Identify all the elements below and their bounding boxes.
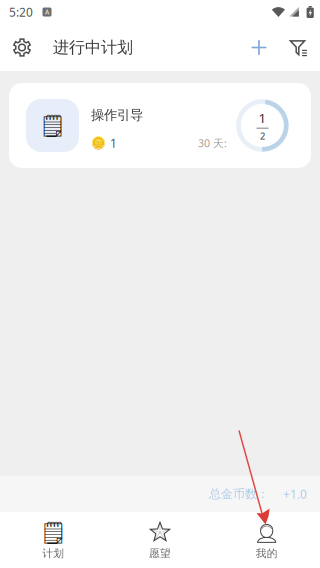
staticText: 进行中计划 <box>53 38 133 57</box>
button[interactable]: 设置 <box>7 26 37 68</box>
staticText: 1 <box>258 109 266 127</box>
staticText: 30 天: <box>198 136 227 150</box>
staticText: A <box>45 8 49 16</box>
button[interactable]: 🗒 <box>0 511 107 568</box>
staticText: 2 <box>260 130 265 142</box>
button[interactable]: 筛选 <box>281 26 314 68</box>
staticText: 计划 <box>42 547 64 560</box>
staticText: 操作引导 <box>91 107 143 123</box>
staticText: 5:20 <box>9 4 33 20</box>
staticText: 愿望 <box>149 547 171 560</box>
staticText: 🪙 <box>91 136 106 150</box>
staticText: 🗒 <box>40 520 67 545</box>
staticText: 总金币数： <box>209 487 269 501</box>
staticText: 1 <box>110 135 117 151</box>
staticText: 我的 <box>256 547 278 560</box>
button[interactable]: 愿望 <box>107 511 213 568</box>
staticText: +1.0 <box>283 486 307 502</box>
button[interactable]: 添加 <box>241 26 277 68</box>
staticText: 🗒 <box>39 113 66 138</box>
button[interactable]: 进行中计划 <box>37 28 133 67</box>
button[interactable]: 🗒 <box>9 83 311 168</box>
button[interactable]: 我的 <box>213 511 320 568</box>
